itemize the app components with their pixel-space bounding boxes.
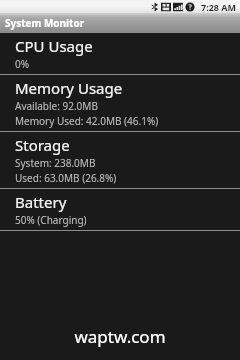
- staticText: 50% (Charging): [15, 213, 87, 227]
- staticText: 0%: [15, 57, 30, 71]
- button[interactable]: Memory Usage: [0, 75, 240, 131]
- button[interactable]: Battery: [0, 189, 240, 230]
- staticText: waptw.com: [74, 325, 166, 348]
- staticText: System: 238.0MB: [15, 156, 96, 170]
- staticText: System Monitor: [5, 16, 85, 30]
- staticText: Battery: [15, 192, 67, 212]
- button[interactable]: System Monitor: [0, 13, 240, 32]
- staticText: Available: 92.0MB: [15, 99, 98, 113]
- button[interactable]: Storage: [0, 132, 240, 188]
- staticText: Storage: [15, 135, 70, 155]
- button[interactable]: CPU Usage: [0, 33, 240, 74]
- staticText: Used: 63.0MB (26.8%): [15, 171, 117, 185]
- staticText: Memory Usage: [15, 78, 123, 98]
- staticText: Memory Used: 42.0MB (46.1%): [15, 114, 159, 128]
- staticText: CPU Usage: [15, 36, 93, 56]
- staticText: 7:28 AM: [201, 1, 237, 13]
